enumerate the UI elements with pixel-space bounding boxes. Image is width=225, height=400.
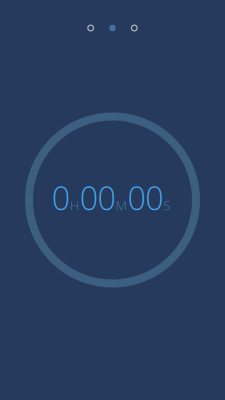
staticText: 00 [127, 176, 163, 220]
staticText: H [70, 196, 80, 214]
button[interactable]: 0 [52, 176, 170, 224]
staticText: S [163, 196, 170, 214]
staticText: 00 [80, 176, 115, 220]
staticText: M [115, 196, 127, 214]
staticText: 0 [52, 176, 70, 220]
